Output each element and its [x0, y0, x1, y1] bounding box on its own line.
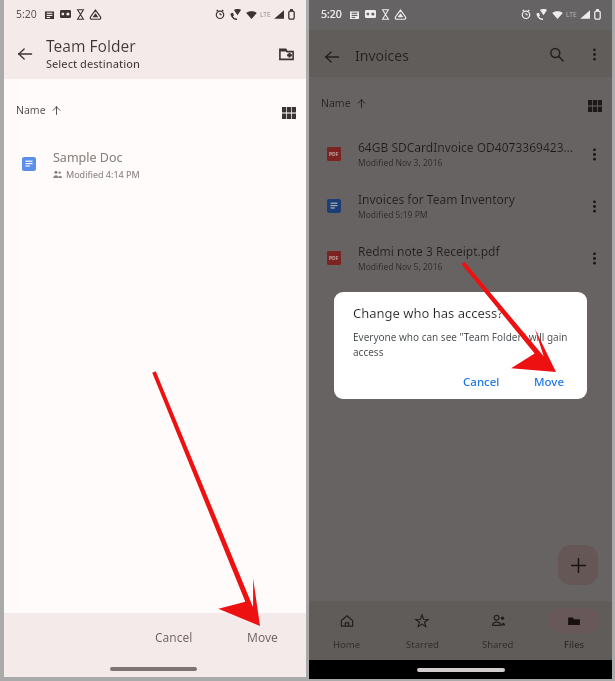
- staticText: Starred: [406, 638, 439, 651]
- button[interactable]: Invoices for Team Inventory: [309, 180, 612, 232]
- button[interactable]: More options: [576, 36, 612, 72]
- staticText: Everyone who can see "Team Folder" will …: [353, 330, 572, 359]
- button[interactable]: Cancel: [143, 621, 205, 653]
- staticText: PDF: [329, 255, 339, 262]
- staticText: Cancel: [155, 629, 193, 645]
- staticText: Modified 5:19 PM: [358, 209, 428, 221]
- button[interactable]: More options: [576, 188, 612, 224]
- button[interactable]: Back: [4, 33, 46, 75]
- staticText: Invoices for Team Inventory: [358, 191, 515, 207]
- button[interactable]: PDF: [309, 128, 612, 180]
- staticText: 5:20: [16, 7, 37, 21]
- staticText: 5:20: [321, 7, 342, 21]
- button[interactable]: More options: [576, 240, 612, 276]
- staticText: Modified 4:14 PM: [66, 168, 140, 180]
- button[interactable]: Switch to grid view: [276, 97, 302, 123]
- staticText: PDF: [329, 151, 339, 158]
- button[interactable]: Name: [321, 92, 366, 114]
- button[interactable]: Shared: [460, 601, 536, 660]
- button[interactable]: Search: [536, 34, 576, 74]
- staticText: Cancel: [463, 374, 500, 390]
- staticText: Name: [16, 103, 46, 117]
- button[interactable]: Move: [235, 621, 290, 653]
- staticText: Invoices: [355, 46, 409, 65]
- button[interactable]: Cancel: [455, 368, 508, 396]
- button[interactable]: Name: [16, 99, 61, 121]
- staticText: Select destination: [46, 56, 140, 71]
- button[interactable]: Files: [536, 601, 612, 660]
- button[interactable]: Move: [526, 368, 573, 396]
- staticText: Modified Nov 5, 2016: [358, 261, 443, 273]
- staticText: Redmi note 3 Receipt.pdf: [358, 243, 500, 259]
- button[interactable]: Starred: [384, 601, 460, 660]
- button[interactable]: Create new: [558, 545, 598, 585]
- staticText: Shared: [482, 638, 514, 651]
- staticText: LTE: [566, 10, 577, 19]
- button[interactable]: Sample Doc: [4, 141, 306, 187]
- staticText: 64GB SDCardInvoice OD40733694235...: [358, 139, 576, 155]
- button[interactable]: PDF: [309, 232, 612, 284]
- staticText: Team Folder: [46, 35, 136, 56]
- button[interactable]: More options: [576, 136, 612, 172]
- staticText: Name: [321, 96, 351, 110]
- staticText: Files: [564, 638, 585, 651]
- staticText: Move: [247, 629, 278, 645]
- button[interactable]: Switch to grid view: [582, 90, 608, 116]
- staticText: Modified Nov 3, 2016: [358, 157, 443, 169]
- staticText: Move: [534, 374, 565, 390]
- staticText: Change who has access?: [353, 304, 503, 322]
- staticText: Sample Doc: [53, 149, 123, 166]
- staticText: LTE: [260, 10, 271, 19]
- button[interactable]: Home: [309, 601, 384, 660]
- staticText: Home: [333, 638, 361, 651]
- button[interactable]: Create new folder: [266, 34, 306, 74]
- button[interactable]: Back: [309, 31, 355, 77]
